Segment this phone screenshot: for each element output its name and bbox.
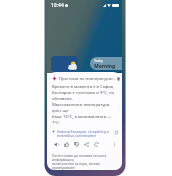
button[interactable]: Sources (113, 129, 119, 135)
staticText: Gemini може да показва неточна информаци… (52, 153, 117, 170)
staticText: 10:44 (51, 2, 64, 9)
button[interactable]: Volume (52, 140, 61, 149)
button[interactable]: Dislike (72, 140, 81, 149)
button[interactable]: Like (62, 140, 71, 149)
staticText: Времето в момента е в София, България е … (52, 84, 119, 126)
staticText: Прогноза за температурат... (59, 76, 117, 82)
staticText: Morning brief (94, 63, 122, 70)
staticText: Новини България sinoptik.bg и meteoblue.… (57, 129, 109, 138)
button[interactable]: Share (82, 140, 91, 149)
button[interactable]: More options (110, 140, 119, 149)
button[interactable]: Today (90, 57, 122, 70)
staticText: Today (94, 59, 103, 63)
button[interactable]: Refresh (92, 140, 101, 149)
button[interactable]: Pin (117, 75, 119, 82)
button[interactable]: Weather (51, 56, 78, 72)
